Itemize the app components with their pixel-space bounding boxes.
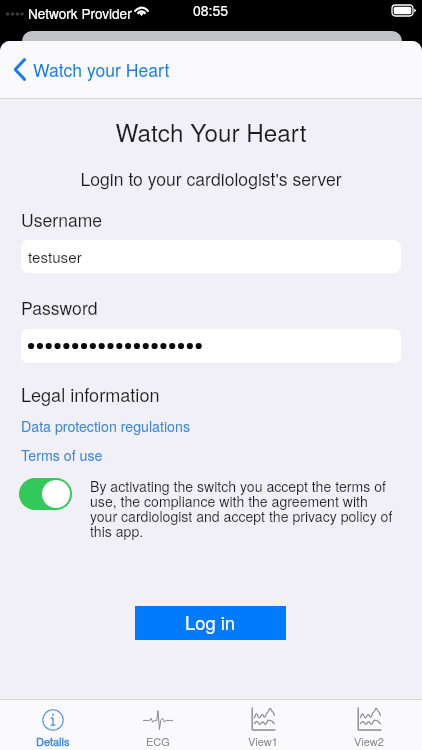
button[interactable]: Details <box>0 700 105 750</box>
button[interactable]: ECG <box>105 700 210 750</box>
staticText: Watch your Heart <box>33 57 170 82</box>
staticText: Login to your cardiologist's server <box>0 166 422 191</box>
button[interactable]: Log in <box>135 606 286 640</box>
button[interactable]: View2 <box>316 700 422 750</box>
staticText: By activating the switch you accept the … <box>90 476 396 541</box>
button[interactable]: View1 <box>210 700 316 750</box>
button[interactable]: Back to Watch your Heart <box>0 41 422 98</box>
staticText: View1 <box>248 733 278 749</box>
button[interactable]: Terms of use <box>0 445 113 465</box>
button[interactable]: testuser <box>21 240 401 273</box>
staticText: Log in <box>185 609 236 635</box>
staticText: View2 <box>354 733 384 749</box>
staticText: Username <box>21 207 103 232</box>
staticText: Legal information <box>21 381 160 407</box>
button[interactable] <box>21 329 401 363</box>
staticText: Network Provider <box>28 3 132 22</box>
button[interactable]: Data protection regulations <box>0 416 200 436</box>
staticText: testuser <box>28 246 82 268</box>
staticText: ECG <box>146 733 170 749</box>
staticText: Watch Your Heart <box>0 114 422 149</box>
staticText: 08:55 <box>193 0 229 20</box>
button[interactable]: Accept terms and conditions <box>19 478 72 510</box>
staticText: Password <box>21 295 98 320</box>
staticText: Details <box>36 733 70 749</box>
